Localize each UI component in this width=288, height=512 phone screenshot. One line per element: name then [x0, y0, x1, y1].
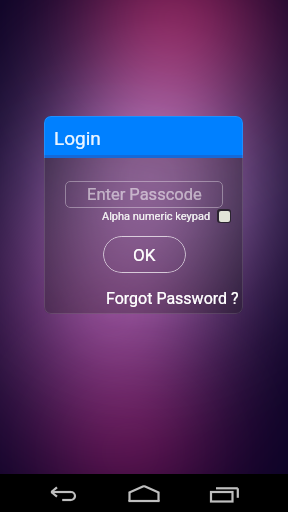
staticText: Enter Passcode	[87, 185, 202, 204]
staticText: OK	[133, 245, 156, 265]
button[interactable]: Enter Passcode	[65, 181, 223, 208]
button[interactable]: Alpha numeric keypad	[217, 209, 231, 223]
button[interactable]: Home	[96, 474, 192, 512]
staticText: Login	[54, 127, 101, 149]
button[interactable]: OK	[103, 236, 186, 273]
staticText: Alpha numeric keypad	[102, 210, 211, 223]
button[interactable]: Forgot Password ?	[106, 289, 239, 308]
button[interactable]: Back	[0, 474, 96, 512]
button[interactable]: Recent apps	[192, 474, 288, 512]
